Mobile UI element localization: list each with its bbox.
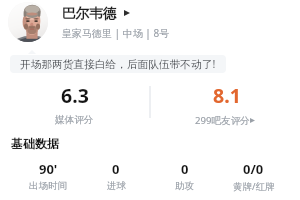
button[interactable]: 6.3 — [27, 82, 122, 126]
staticText: 进球 — [107, 180, 126, 192]
staticText: 基础数据 — [11, 136, 59, 151]
button[interactable]: 0 — [150, 160, 219, 192]
button[interactable]: 0/0 — [219, 160, 288, 193]
staticText: 0/0 — [243, 160, 264, 178]
button[interactable]: 开场那两货直接白给，后面队伍带不动了! — [10, 55, 226, 73]
staticText: 黄牌/红牌 — [233, 180, 275, 193]
staticText: 6.3 — [61, 82, 89, 109]
staticText: 开场那两货直接白给，后面队伍带不动了! — [20, 57, 216, 72]
button[interactable]: 0 — [82, 160, 150, 192]
button[interactable]: 90' — [14, 160, 82, 192]
button[interactable]: 8.1 — [177, 82, 272, 127]
button[interactable]: Player photo — [8, 2, 48, 42]
staticText: 皇家马德里 | 中场 | 8号 — [62, 26, 170, 40]
staticText: 0 — [181, 160, 189, 178]
staticText: 助攻 — [175, 180, 194, 192]
staticText: 90' — [39, 160, 58, 178]
staticText: 299吧友评分 — [195, 114, 250, 127]
button[interactable]: 巴尔韦德 — [62, 5, 130, 22]
staticText: 0 — [112, 160, 120, 178]
staticText: 8.1 — [213, 82, 241, 109]
staticText: 巴尔韦德 — [62, 5, 117, 22]
staticText: 出场时间 — [29, 180, 67, 192]
staticText: 媒体评分 — [55, 114, 94, 126]
